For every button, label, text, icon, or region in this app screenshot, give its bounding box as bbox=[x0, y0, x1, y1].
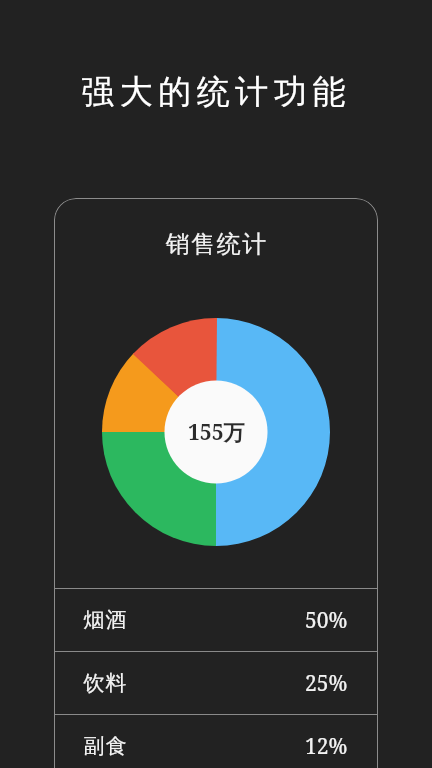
staticText: 25% bbox=[305, 669, 348, 698]
staticText: 销售统计 bbox=[165, 229, 267, 259]
staticText: 155万 bbox=[188, 418, 245, 447]
button[interactable]: 饮料 bbox=[54, 652, 378, 714]
button[interactable]: 烟酒 bbox=[54, 589, 378, 651]
button[interactable]: 销售统计饼图 bbox=[102, 318, 330, 546]
staticText: 12% bbox=[305, 732, 348, 761]
staticText: 烟酒 bbox=[83, 607, 127, 633]
button[interactable]: 副食 bbox=[54, 715, 378, 768]
staticText: 副食 bbox=[83, 733, 127, 759]
staticText: 强大的统计功能 bbox=[0, 71, 432, 113]
staticText: 饮料 bbox=[83, 670, 127, 696]
staticText: 50% bbox=[305, 606, 348, 635]
